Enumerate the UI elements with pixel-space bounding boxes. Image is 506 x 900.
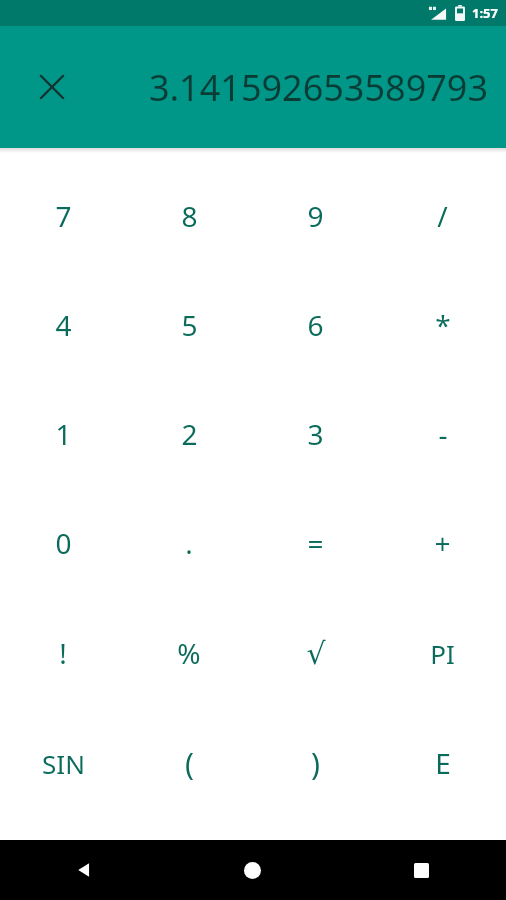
staticText: 2 [181, 415, 198, 453]
button[interactable]: / [379, 161, 506, 270]
staticText: = [307, 524, 324, 562]
button[interactable]: Home [168, 840, 337, 900]
button[interactable]: 0 [0, 488, 126, 598]
staticText: . [185, 524, 193, 562]
button[interactable]: 2 [126, 379, 252, 488]
staticText: SIN [42, 746, 85, 781]
button[interactable]: * [379, 270, 506, 379]
button[interactable]: Back [0, 840, 168, 900]
staticText: 3.141592653589793 [148, 63, 488, 112]
button[interactable]: 1 [0, 379, 126, 488]
staticText: 0 [55, 524, 72, 562]
button[interactable]: E [379, 708, 506, 818]
button[interactable]: . [126, 488, 252, 598]
staticText: 1:57 [472, 4, 498, 22]
staticText: ( [185, 743, 194, 784]
button[interactable]: - [379, 379, 506, 488]
staticText: √ [306, 636, 326, 671]
button[interactable]: 5 [126, 270, 252, 379]
staticText: E [435, 744, 451, 782]
button[interactable]: PI [379, 598, 506, 708]
button[interactable]: ! [0, 598, 126, 708]
button[interactable]: + [379, 488, 506, 598]
button[interactable]: 7 [0, 161, 126, 270]
button[interactable]: ) [252, 708, 379, 818]
button[interactable]: Recent apps [337, 840, 506, 900]
button[interactable]: SIN [0, 708, 126, 818]
staticText: 5 [181, 306, 198, 344]
staticText: 9 [307, 197, 324, 235]
staticText: 1 [55, 415, 72, 453]
staticText: 4 [55, 306, 72, 344]
staticText: PI [430, 636, 455, 671]
staticText: + [434, 524, 451, 562]
staticText: / [437, 197, 448, 235]
button[interactable]: 9 [252, 161, 379, 270]
staticText: ) [311, 743, 320, 784]
button[interactable]: 8 [126, 161, 252, 270]
staticText: 6 [307, 306, 324, 344]
staticText: * [435, 306, 451, 344]
staticText: ! [59, 634, 67, 672]
button[interactable]: Clear [26, 61, 78, 113]
staticText: - [438, 415, 448, 453]
button[interactable]: 6 [252, 270, 379, 379]
staticText: % [177, 634, 201, 672]
staticText: 8 [181, 197, 198, 235]
button[interactable]: 3 [252, 379, 379, 488]
staticText: 3 [307, 415, 324, 453]
button[interactable]: ( [126, 708, 252, 818]
button[interactable]: √ [252, 598, 379, 708]
button[interactable]: = [252, 488, 379, 598]
button[interactable]: 4 [0, 270, 126, 379]
button[interactable]: % [126, 598, 252, 708]
staticText: 7 [55, 197, 72, 235]
